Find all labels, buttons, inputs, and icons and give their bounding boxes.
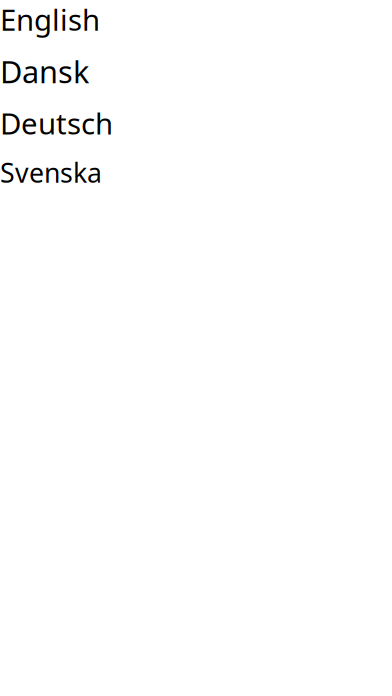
staticText: Deutsch: [0, 104, 113, 143]
staticText: Dansk: [0, 51, 89, 92]
staticText: English: [0, 0, 100, 39]
staticText: Svenska: [0, 155, 102, 190]
